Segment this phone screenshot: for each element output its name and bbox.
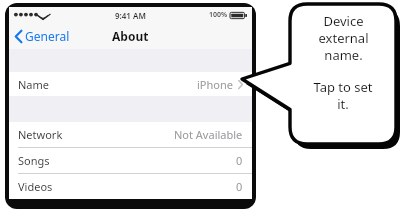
staticText: 100% <box>209 10 228 20</box>
button[interactable]: General <box>9 24 78 48</box>
button[interactable]: Network <box>9 122 252 147</box>
staticText: Videos <box>18 179 53 194</box>
staticText: 0 <box>236 153 243 168</box>
button[interactable]: Videos <box>9 174 252 199</box>
staticText: Tap to set it. <box>313 78 373 113</box>
button[interactable]: Name <box>9 72 252 96</box>
staticText: iPhone <box>197 77 233 92</box>
staticText: General <box>25 28 70 44</box>
staticText: Songs <box>18 153 50 168</box>
staticText: 0 <box>236 179 243 194</box>
staticText: Device external name. <box>318 12 369 64</box>
button[interactable]: Callout: Device external name. Tap to se… <box>293 12 393 113</box>
staticText: Network <box>18 127 63 142</box>
staticText: Name <box>18 77 50 92</box>
staticText: Not Available <box>174 127 243 142</box>
staticText: About <box>112 28 149 44</box>
staticText: 9:41 AM <box>115 10 146 21</box>
button[interactable]: Songs <box>9 148 252 173</box>
